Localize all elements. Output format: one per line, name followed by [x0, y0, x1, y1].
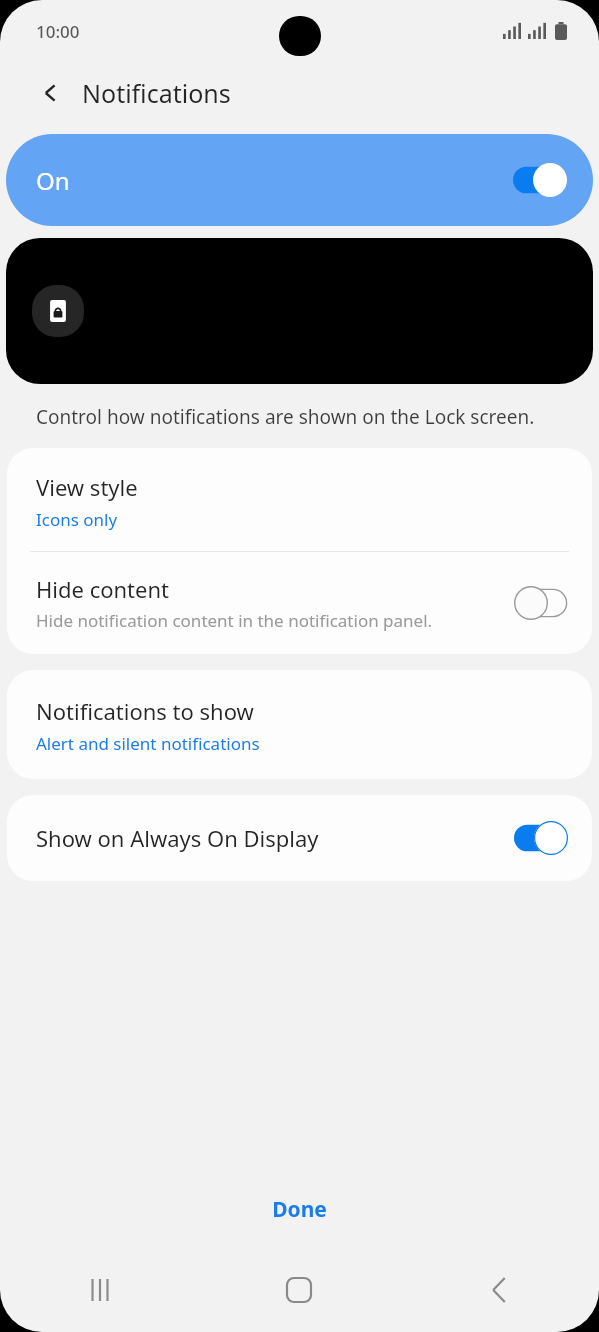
button[interactable]: View style — [7, 448, 592, 551]
staticText: Hide notification content in the notific… — [36, 609, 433, 632]
button[interactable]: Notifications to show — [7, 670, 592, 779]
staticText: Hide content — [36, 574, 169, 604]
staticText: Show on Always On Display — [36, 823, 514, 853]
staticText: Done — [272, 1195, 327, 1224]
staticText: Notifications — [82, 76, 231, 110]
button[interactable] — [6, 238, 593, 384]
button[interactable]: Show on Always On Display — [7, 795, 592, 881]
button[interactable]: Back — [34, 76, 68, 110]
button[interactable]: On — [6, 134, 593, 226]
staticText: On — [36, 164, 70, 197]
staticText: Alert and silent notifications — [36, 732, 260, 755]
staticText: 10:00 — [36, 20, 80, 43]
button[interactable]: Back — [399, 1262, 599, 1318]
button[interactable]: Hide content — [7, 552, 592, 654]
button[interactable]: Done — [232, 1183, 367, 1236]
staticText: Icons only — [36, 508, 118, 531]
staticText: Notifications to show — [36, 696, 254, 726]
staticText: View style — [36, 472, 138, 502]
staticText: Control how notifications are shown on t… — [36, 404, 551, 430]
button[interactable]: Recents — [0, 1262, 199, 1318]
button[interactable]: Home — [199, 1262, 399, 1318]
